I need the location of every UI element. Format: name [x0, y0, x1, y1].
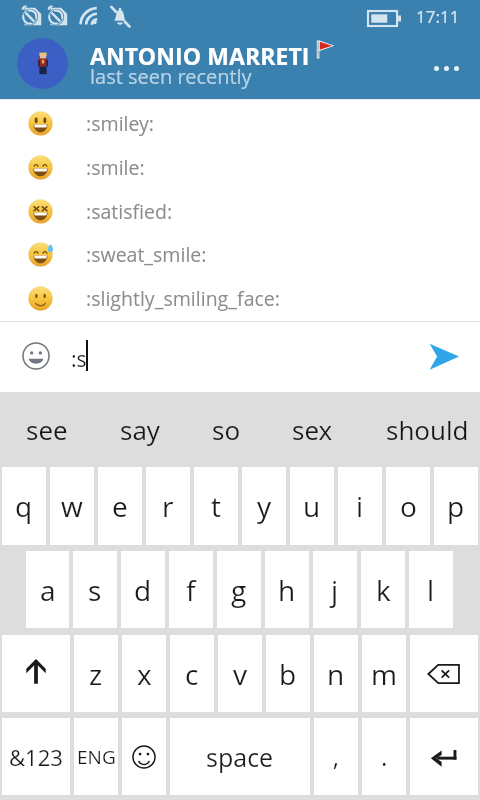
button[interactable]: e: [98, 467, 142, 545]
button[interactable]: .: [362, 718, 406, 795]
staticText: :s: [71, 345, 87, 374]
button[interactable]: Backspace: [410, 635, 478, 712]
staticText: f: [186, 571, 196, 609]
staticText: ENG: [77, 744, 116, 770]
staticText: t: [211, 487, 221, 525]
button[interactable]: f: [169, 551, 213, 628]
staticText: r: [162, 487, 174, 525]
button[interactable]: h: [265, 551, 309, 628]
staticText: c: [185, 655, 199, 693]
button[interactable]: :slightly_smiling_face:: [0, 276, 480, 320]
staticText: &123: [9, 742, 63, 772]
button[interactable]: :smile:: [0, 145, 480, 189]
staticText: ,: [333, 740, 339, 773]
staticText: b: [279, 655, 297, 693]
staticText: :smile:: [86, 154, 145, 181]
button[interactable]: k: [361, 551, 405, 628]
staticText: n: [327, 655, 345, 693]
staticText: l: [427, 571, 435, 609]
button[interactable]: s: [73, 551, 117, 628]
staticText: :sweat_smile:: [86, 241, 207, 268]
staticText: z: [89, 655, 103, 693]
button[interactable]: a: [26, 551, 69, 628]
staticText: should: [386, 412, 469, 447]
button[interactable]: say: [94, 392, 186, 467]
button[interactable]: l: [409, 551, 453, 628]
button[interactable]: m: [362, 635, 406, 712]
staticText: h: [278, 571, 296, 609]
staticText: :slightly_smiling_face:: [86, 285, 280, 312]
button[interactable]: &123: [2, 718, 70, 795]
staticText: u: [303, 487, 321, 525]
staticText: i: [356, 487, 364, 525]
button[interactable]: Send: [417, 329, 471, 383]
button[interactable]: i: [338, 467, 382, 545]
button[interactable]: Enter: [410, 718, 478, 795]
staticText: j: [331, 571, 339, 609]
button[interactable]: see: [0, 392, 94, 467]
button[interactable]: More options: [420, 44, 472, 92]
button[interactable]: ENG: [74, 718, 118, 795]
button[interactable]: d: [121, 551, 165, 628]
button[interactable]: z: [74, 635, 118, 712]
staticText: g: [231, 571, 247, 609]
staticText: :satisfied:: [86, 198, 173, 225]
staticText: o: [400, 487, 417, 525]
staticText: y: [257, 487, 272, 525]
button[interactable]: Emoji keyboard: [122, 718, 166, 795]
button[interactable]: x: [122, 635, 166, 712]
button[interactable]: c: [170, 635, 214, 712]
staticText: x: [137, 655, 152, 693]
staticText: .: [381, 740, 388, 773]
staticText: e: [112, 487, 128, 525]
button[interactable]: ,: [314, 718, 358, 795]
button[interactable]: j: [313, 551, 357, 628]
staticText: d: [134, 571, 152, 609]
button[interactable]: u: [290, 467, 334, 545]
button[interactable]: t: [194, 467, 238, 545]
button[interactable]: Shift: [2, 635, 70, 712]
button[interactable]: sex: [266, 392, 359, 467]
staticText: space: [206, 740, 274, 774]
button[interactable]: r: [146, 467, 190, 545]
staticText: 17:11: [416, 5, 460, 28]
button[interactable]: p: [434, 467, 478, 545]
button[interactable]: n: [314, 635, 358, 712]
button[interactable]: :satisfied:: [0, 189, 480, 233]
button[interactable]: space: [170, 718, 310, 795]
staticText: m: [371, 655, 398, 693]
button[interactable]: b: [266, 635, 310, 712]
staticText: :smiley:: [86, 110, 155, 137]
button[interactable]: :smiley:: [0, 101, 480, 145]
button[interactable]: o: [386, 467, 430, 545]
staticText: so: [212, 412, 241, 447]
staticText: say: [120, 412, 160, 447]
button[interactable]: Emoji: [11, 331, 61, 381]
button[interactable]: y: [242, 467, 286, 545]
staticText: s: [88, 571, 102, 609]
staticText: w: [61, 487, 83, 525]
staticText: v: [233, 655, 248, 693]
staticText: q: [15, 487, 33, 525]
button[interactable]: so: [186, 392, 266, 467]
button[interactable]: g: [217, 551, 261, 628]
button[interactable]: should: [359, 392, 480, 467]
staticText: a: [40, 571, 56, 609]
button[interactable]: v: [218, 635, 262, 712]
staticText: see: [26, 412, 68, 447]
button[interactable]: q: [2, 467, 46, 545]
staticText: k: [376, 571, 391, 609]
staticText: p: [447, 487, 465, 525]
button[interactable]: w: [50, 467, 94, 545]
staticText: sex: [292, 412, 333, 447]
staticText: last seen recently: [90, 63, 252, 90]
button[interactable]: Profile photo: [17, 38, 68, 89]
staticText: ANTONIO MARRETI: [90, 40, 310, 71]
button[interactable]: :sweat_smile:: [0, 232, 480, 276]
